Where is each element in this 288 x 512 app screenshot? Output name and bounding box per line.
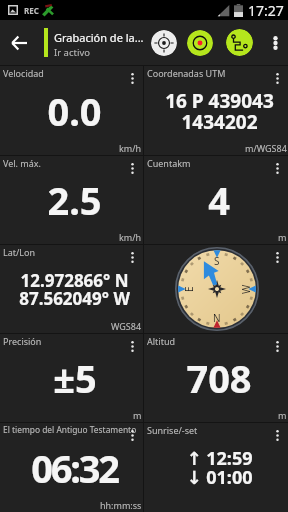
staticText: km/h xyxy=(119,231,142,243)
staticText: ±5 xyxy=(53,352,97,404)
button[interactable]: More options xyxy=(266,156,288,180)
staticText: m xyxy=(133,409,142,421)
staticText: WGS84 xyxy=(111,320,142,332)
staticText: N xyxy=(213,311,221,325)
button[interactable]: More options xyxy=(144,245,288,333)
staticText: Altitud xyxy=(147,335,175,347)
staticText: W xyxy=(239,284,253,294)
button[interactable]: More options xyxy=(266,245,288,269)
staticText: m/WGS84 xyxy=(245,142,287,154)
staticText: 2.5 xyxy=(47,174,102,226)
staticText: REC xyxy=(24,5,39,16)
staticText: 12.972866° N 87.562049° W xyxy=(19,269,130,310)
staticText: Cuentakm xyxy=(147,157,191,169)
staticText: ↑ 12:59 ↓ 01:00 xyxy=(186,446,253,489)
staticText: hh:mm:ss xyxy=(100,499,142,511)
button[interactable]: Record xyxy=(187,30,213,56)
staticText: Sunrise/-set xyxy=(147,424,198,436)
staticText: 16 P 439043 1434202 xyxy=(165,88,274,134)
button[interactable]: Sunrise/-set xyxy=(144,423,288,512)
staticText: 0.0 xyxy=(47,85,102,137)
button[interactable]: More options xyxy=(121,156,143,180)
button[interactable]: Route xyxy=(226,29,253,56)
button[interactable]: Altitud xyxy=(144,334,288,422)
staticText: Lat/Lon xyxy=(3,246,36,258)
staticText: Coordenadas UTM xyxy=(147,67,226,79)
staticText: m xyxy=(278,409,287,421)
staticText: Velocidad xyxy=(3,67,44,79)
button[interactable]: Velocidad xyxy=(0,66,143,155)
button[interactable]: More options xyxy=(266,66,288,90)
button[interactable]: Precisión xyxy=(0,334,143,422)
staticText: S xyxy=(214,254,220,268)
button[interactable]: More options xyxy=(266,423,288,447)
button[interactable]: More options xyxy=(262,20,288,65)
button[interactable]: Back xyxy=(0,20,38,65)
staticText: El tiempo del Antiguo Testamento xyxy=(3,424,137,435)
button[interactable]: Center location xyxy=(151,30,177,56)
staticText: Grabación de la... xyxy=(54,30,144,45)
button[interactable]: Coordenadas UTM xyxy=(144,66,288,155)
button[interactable]: More options xyxy=(266,334,288,358)
staticText: 17:27 xyxy=(248,1,284,20)
button[interactable]: More options xyxy=(121,245,143,269)
staticText: Precisión xyxy=(3,335,42,347)
button[interactable]: More options xyxy=(121,66,143,90)
staticText: 708 xyxy=(186,352,252,404)
staticText: 06:32 xyxy=(31,442,118,494)
button[interactable]: More options xyxy=(121,334,143,358)
button[interactable]: El tiempo del Antiguo Testamento xyxy=(0,423,143,512)
staticText: km/h xyxy=(119,142,142,154)
button[interactable]: Lat/Lon xyxy=(0,245,143,333)
button[interactable]: Cuentakm xyxy=(144,156,288,244)
button[interactable]: Vel. máx. xyxy=(0,156,143,244)
staticText: Ir activo xyxy=(54,46,90,59)
staticText: Vel. máx. xyxy=(3,157,42,169)
staticText: 4 xyxy=(208,174,230,226)
staticText: E xyxy=(182,286,196,292)
staticText: m xyxy=(278,231,287,243)
button[interactable]: More options xyxy=(121,423,143,447)
